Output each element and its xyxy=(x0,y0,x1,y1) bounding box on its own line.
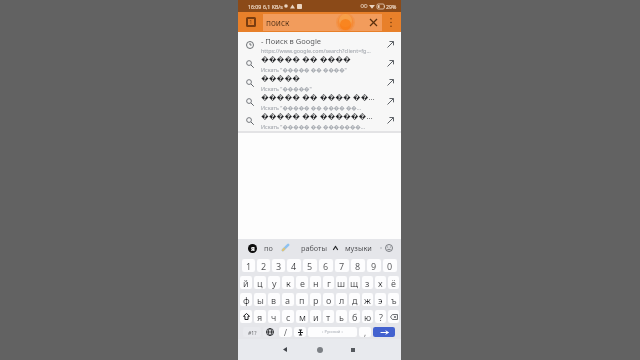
button[interactable]: е xyxy=(296,276,308,289)
button[interactable]: Clear xyxy=(365,12,381,32)
button[interactable]: ц xyxy=(254,276,266,289)
staticText: 8 xyxy=(355,260,361,272)
button[interactable]: ф xyxy=(240,293,252,306)
button[interactable]: ����� �� ���� ��… xyxy=(238,92,401,111)
staticText: музыки xyxy=(345,243,372,253)
button[interactable]: м xyxy=(296,310,308,323)
button[interactable]: 7 xyxy=(335,259,349,272)
staticText: э xyxy=(378,294,383,306)
button[interactable]: у xyxy=(268,276,280,289)
button[interactable]: й xyxy=(240,276,252,289)
button[interactable]: в xyxy=(268,293,280,306)
button[interactable]: по xyxy=(264,239,273,257)
button[interactable]: а xyxy=(282,293,294,306)
button[interactable]: я xyxy=(254,310,266,323)
button[interactable]: - Поиск в Google xyxy=(238,35,401,54)
button[interactable]: к xyxy=(282,276,294,289)
button[interactable]: т xyxy=(323,310,334,323)
staticText: 7 xyxy=(339,260,345,272)
button[interactable]: Yandex xyxy=(248,244,257,253)
staticText: ф xyxy=(243,294,250,306)
button[interactable] xyxy=(240,310,252,323)
button[interactable]: ь xyxy=(336,310,347,323)
staticText: работы xyxy=(301,243,328,253)
staticText: й xyxy=(243,277,249,289)
staticText: ю xyxy=(364,311,372,323)
button[interactable]: ����� �� ������… xyxy=(238,111,401,130)
staticText: ч xyxy=(271,311,277,323)
button[interactable]: д xyxy=(349,293,360,306)
button[interactable]: Emoji xyxy=(383,239,394,257)
button[interactable]: п xyxy=(296,293,308,306)
button[interactable]: ю xyxy=(362,310,373,323)
button[interactable]: р xyxy=(310,293,321,306)
button[interactable]: ё xyxy=(388,276,399,289)
staticText: ����� �� ������… xyxy=(261,111,373,122)
button[interactable]: ж xyxy=(362,293,373,306)
button[interactable]: ъ xyxy=(388,293,399,306)
staticText: ����� xyxy=(261,73,300,84)
button[interactable]: щ xyxy=(349,276,360,289)
button[interactable]: Back xyxy=(276,339,294,360)
button[interactable]: Tabs xyxy=(246,17,256,27)
button[interactable]: Go xyxy=(373,327,395,337)
button[interactable]: Recents xyxy=(344,339,362,360)
staticText: / xyxy=(284,327,287,337)
button[interactable]: с xyxy=(282,310,294,323)
staticText: л xyxy=(339,294,345,306)
button[interactable]: о xyxy=(323,293,334,306)
button[interactable]: Insert suggestion xyxy=(380,92,401,111)
button[interactable]: ч xyxy=(268,310,280,323)
button[interactable]: л xyxy=(336,293,347,306)
button[interactable] xyxy=(263,14,382,31)
staticText: и xyxy=(313,311,319,323)
button[interactable]: 4 xyxy=(287,259,301,272)
staticText: н xyxy=(313,277,319,289)
button[interactable]: б xyxy=(349,310,360,323)
button[interactable]: музыки xyxy=(345,239,372,257)
staticText: ц xyxy=(257,277,263,289)
button[interactable]: ? xyxy=(375,310,386,323)
button[interactable]: 6 xyxy=(319,259,333,272)
button[interactable]: 1 xyxy=(242,259,255,272)
button[interactable] xyxy=(388,310,399,323)
button[interactable]: 2 xyxy=(257,259,270,272)
button[interactable]: ����� xyxy=(238,73,401,92)
button[interactable]: Home xyxy=(311,339,329,360)
button[interactable]: Insert suggestion xyxy=(380,35,401,54)
button[interactable]: г xyxy=(323,276,334,289)
button[interactable]: ш xyxy=(336,276,347,289)
button[interactable] xyxy=(263,327,277,337)
button[interactable]: 9 xyxy=(367,259,381,272)
button[interactable]: 3 xyxy=(272,259,285,272)
staticText: у xyxy=(272,277,277,289)
button[interactable]: / xyxy=(279,327,292,337)
staticText: 16:09 xyxy=(248,3,262,10)
staticText: ����� �� ���� ��… xyxy=(261,92,375,103)
staticText: а xyxy=(285,294,291,306)
button[interactable]: ����� �� ���� xyxy=(238,54,401,73)
button[interactable] xyxy=(294,327,306,337)
button[interactable]: 5 xyxy=(303,259,317,272)
button[interactable]: н xyxy=(310,276,321,289)
button[interactable]: з xyxy=(362,276,373,289)
staticText: т xyxy=(326,311,331,323)
button[interactable]: и xyxy=(310,310,321,323)
staticText: 29% xyxy=(386,3,397,10)
button[interactable]: Space xyxy=(308,327,357,337)
button[interactable]: Insert suggestion xyxy=(380,54,401,73)
staticText: я xyxy=(257,311,263,323)
button[interactable]: 0 xyxy=(383,259,397,272)
button[interactable]: ы xyxy=(254,293,266,306)
button[interactable]: Insert suggestion xyxy=(380,73,401,92)
button[interactable]: , xyxy=(359,327,371,337)
button[interactable]: More options xyxy=(385,12,397,32)
staticText: по xyxy=(264,243,273,253)
button[interactable]: Insert suggestion xyxy=(380,111,401,130)
staticText: в xyxy=(271,294,277,306)
button[interactable]: э xyxy=(375,293,386,306)
button[interactable]: х xyxy=(375,276,386,289)
button[interactable]: работы xyxy=(301,239,328,257)
button[interactable]: #1? xyxy=(243,327,261,337)
button[interactable]: 8 xyxy=(351,259,365,272)
